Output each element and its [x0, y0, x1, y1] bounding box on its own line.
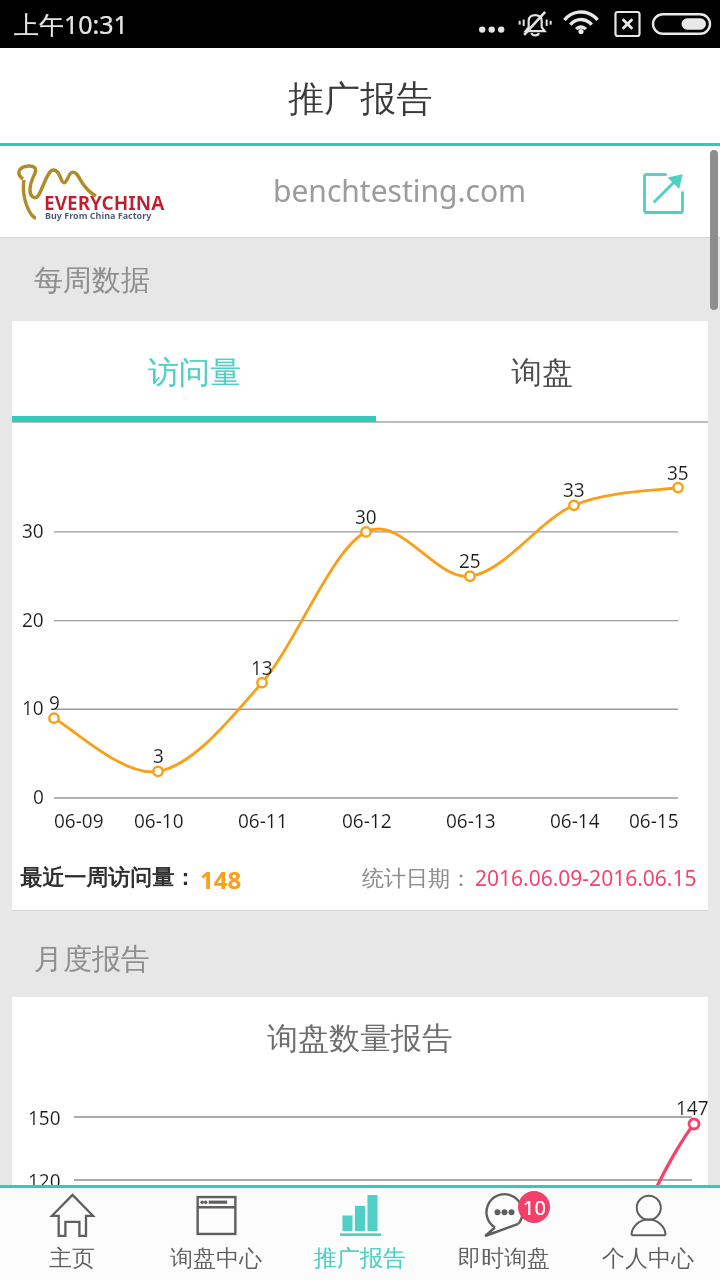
- staticText: 月度报告: [34, 941, 150, 978]
- staticText: 9: [49, 690, 60, 716]
- staticText: 33: [563, 477, 585, 503]
- button[interactable]: 询盘中心: [144, 1188, 288, 1280]
- staticText: 询盘: [511, 353, 573, 392]
- staticText: 06-11: [238, 808, 288, 834]
- staticText: Buy From China Factory: [45, 209, 152, 221]
- staticText: 最近一周访问量：: [20, 864, 196, 892]
- staticText: 06-10: [134, 808, 184, 834]
- staticText: 推广报告: [288, 76, 432, 121]
- staticText: 每周数据: [34, 262, 150, 299]
- staticText: 上午10:31: [14, 7, 128, 41]
- staticText: 主页: [49, 1244, 95, 1273]
- button[interactable]: 推广报告: [288, 1188, 432, 1280]
- staticText: 20: [22, 607, 44, 633]
- button[interactable]: 个人中心: [576, 1188, 720, 1280]
- staticText: 即时询盘: [458, 1244, 550, 1273]
- staticText: EVERYCHINA: [44, 190, 165, 216]
- staticText: 询盘中心: [170, 1244, 262, 1273]
- staticText: 2016.06.09-2016.06.15: [475, 864, 697, 893]
- staticText: 30: [355, 504, 377, 530]
- staticText: 06-13: [446, 808, 496, 834]
- staticText: 10: [22, 695, 44, 721]
- staticText: 询盘数量报告: [267, 1019, 453, 1058]
- staticText: benchtesting.com: [273, 170, 527, 211]
- staticText: 推广报告: [314, 1244, 406, 1273]
- staticText: 个人中心: [602, 1244, 694, 1273]
- button[interactable]: 主页: [0, 1188, 144, 1280]
- staticText: 25: [459, 548, 481, 574]
- button[interactable]: 询盘: [376, 321, 708, 420]
- staticText: 35: [667, 460, 689, 486]
- staticText: 150: [28, 1105, 61, 1131]
- staticText: 统计日期：: [362, 865, 472, 893]
- staticText: 06-15: [629, 808, 679, 834]
- button[interactable]: Open website: [606, 146, 720, 237]
- button[interactable]: EVERYCHINA: [0, 146, 720, 237]
- staticText: 访问量: [148, 353, 241, 392]
- staticText: 10: [523, 1194, 546, 1221]
- staticText: 0: [33, 784, 44, 810]
- staticText: 30: [22, 518, 44, 544]
- staticText: 06-09: [54, 808, 104, 834]
- button[interactable]: 访问量: [12, 321, 376, 420]
- staticText: 148: [200, 863, 242, 896]
- staticText: 147: [676, 1095, 709, 1121]
- button[interactable]: 10: [432, 1188, 576, 1280]
- staticText: 13: [251, 655, 273, 681]
- staticText: 3: [153, 743, 164, 769]
- staticText: 06-12: [342, 808, 392, 834]
- staticText: 06-14: [550, 808, 600, 834]
- staticText: 120: [28, 1168, 61, 1194]
